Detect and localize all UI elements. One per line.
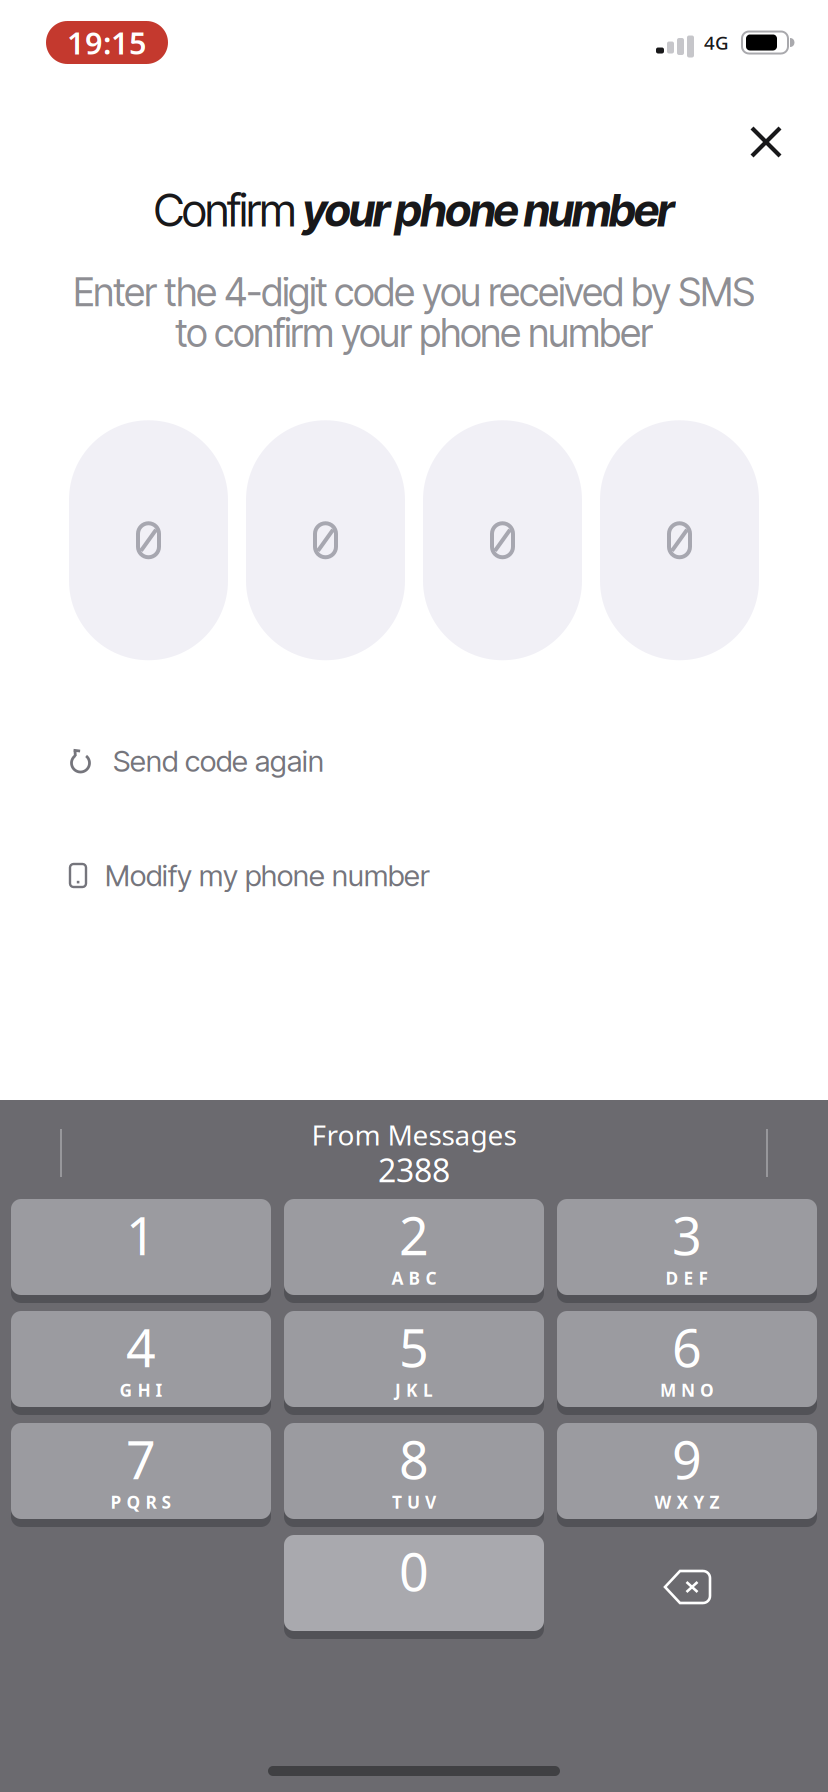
staticText: 2388 (378, 1148, 450, 1191)
staticText: Modify my phone number (105, 858, 430, 893)
staticText: PQRS (110, 1490, 171, 1513)
button[interactable]: 0 (284, 1538, 544, 1636)
button[interactable]: Send code again (0, 743, 828, 779)
staticText: Send code again (113, 743, 324, 779)
staticText: 0 (399, 1536, 429, 1606)
staticText: Enter the 4-digit code you received by S… (73, 269, 755, 356)
staticText: 4 (126, 1312, 156, 1382)
staticText: 19:15 (67, 22, 147, 63)
staticText: 4G (704, 30, 729, 55)
button[interactable]: Modify my phone number (0, 858, 828, 893)
staticText: 8 (399, 1424, 429, 1494)
button[interactable]: 9 (557, 1426, 817, 1524)
button[interactable]: 7 (11, 1426, 271, 1524)
staticText: 5 (399, 1312, 429, 1382)
button[interactable]: 2 (284, 1202, 544, 1300)
button[interactable]: Code digit 1 (69, 420, 228, 660)
button[interactable]: 6 (557, 1314, 817, 1412)
button[interactable]: 5 (284, 1314, 544, 1412)
staticText: Confirm your phone number (154, 184, 674, 237)
button[interactable]: Code digit 2 (246, 420, 405, 660)
staticText: MNO (660, 1378, 714, 1401)
button[interactable]: 4 (11, 1314, 271, 1412)
staticText: DEF (665, 1266, 708, 1289)
button[interactable]: Code digit 4 (600, 420, 759, 660)
staticText: 9 (672, 1424, 702, 1494)
button[interactable]: 8 (284, 1426, 544, 1524)
button[interactable]: 3 (557, 1202, 817, 1300)
staticText: ABC (391, 1266, 436, 1289)
staticText: 3 (672, 1200, 702, 1270)
staticText: From Messages (311, 1116, 516, 1153)
staticText: 7 (126, 1424, 156, 1494)
staticText: TUV (392, 1490, 436, 1513)
button[interactable]: 1 (11, 1202, 271, 1300)
button[interactable]: Code digit 3 (423, 420, 582, 660)
staticText: GHI (119, 1378, 162, 1401)
button[interactable]: Fill code 2388 from Messages (0, 1100, 828, 1200)
button[interactable]: Delete (557, 1538, 817, 1636)
staticText: 1 (126, 1200, 156, 1270)
staticText: JKL (395, 1378, 433, 1401)
staticText: 2 (399, 1200, 429, 1270)
button[interactable]: Close (752, 128, 828, 156)
staticText: 6 (672, 1312, 702, 1382)
button[interactable]: Return to call (46, 21, 168, 64)
staticText: WXYZ (654, 1490, 719, 1513)
